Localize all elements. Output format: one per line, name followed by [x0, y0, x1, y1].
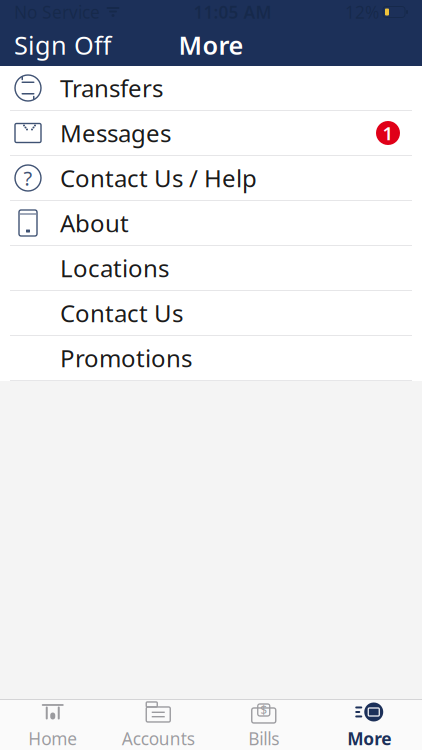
staticText: 12% [345, 0, 379, 23]
button[interactable]: About [0, 201, 422, 246]
staticText: Messages [60, 117, 171, 149]
button[interactable]: Contact Us [0, 291, 422, 336]
staticText: Bills [248, 727, 279, 750]
staticText: Sign Off [14, 28, 111, 62]
staticText: Contact Us / Help [60, 162, 257, 194]
button[interactable]: Home [0, 700, 105, 750]
staticText: ? [23, 165, 32, 191]
staticText: Transfers [60, 72, 163, 104]
button[interactable]: $ [211, 700, 316, 750]
staticText: Promotions [60, 342, 192, 374]
staticText: More [178, 28, 243, 62]
button[interactable]: Promotions [0, 336, 422, 381]
staticText: $ [260, 702, 267, 718]
button[interactable]: ? [0, 156, 422, 201]
staticText: 1 [382, 121, 393, 145]
button[interactable]: More [316, 700, 422, 750]
button[interactable]: Transfers [0, 66, 422, 111]
staticText: No Service [14, 0, 100, 23]
staticText: 11:05 AM [193, 0, 271, 23]
staticText: More [347, 727, 391, 750]
staticText: Locations [60, 252, 169, 284]
button[interactable]: Messages [0, 111, 422, 156]
staticText: Accounts [122, 727, 195, 750]
button[interactable]: Locations [0, 246, 422, 291]
button[interactable]: Sign Off [0, 19, 125, 71]
staticText: Contact Us [60, 297, 183, 329]
button[interactable]: Accounts [105, 700, 211, 750]
staticText: About [60, 207, 129, 239]
staticText: Home [28, 727, 77, 750]
